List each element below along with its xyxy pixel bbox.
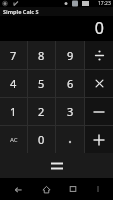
staticText: 2 bbox=[38, 104, 45, 119]
button[interactable]: Back bbox=[8, 179, 28, 199]
button[interactable] bbox=[56, 126, 84, 153]
button[interactable]: 3 bbox=[56, 98, 84, 125]
button[interactable]: 8 bbox=[28, 41, 55, 69]
staticText: 4 bbox=[10, 76, 17, 91]
staticText: 5 bbox=[38, 76, 45, 91]
button[interactable]: Recent apps bbox=[63, 179, 83, 199]
button[interactable]: Home bbox=[36, 179, 56, 199]
staticText: 8 bbox=[38, 48, 45, 63]
staticText: 0 bbox=[94, 17, 104, 39]
button[interactable]: 5 bbox=[28, 70, 55, 97]
staticText: 3 bbox=[67, 104, 74, 119]
staticText: AC bbox=[10, 136, 18, 144]
button[interactable] bbox=[85, 126, 113, 153]
staticText: 1 bbox=[10, 104, 17, 119]
staticText: 9 bbox=[67, 48, 74, 63]
button[interactable]: Equals bbox=[0, 153, 113, 178]
button[interactable]: 2 bbox=[28, 98, 55, 125]
button[interactable] bbox=[85, 41, 113, 69]
button[interactable]: More options bbox=[91, 182, 105, 196]
button[interactable]: 9 bbox=[56, 41, 84, 69]
button[interactable]: 4 bbox=[0, 70, 27, 97]
button[interactable]: 7 bbox=[0, 41, 27, 69]
staticText: 7 bbox=[10, 48, 17, 63]
button[interactable]: 1 bbox=[0, 98, 27, 125]
staticText: Simple Calc S bbox=[3, 8, 39, 15]
button[interactable]: 6 bbox=[56, 70, 84, 97]
button[interactable] bbox=[85, 98, 113, 125]
button[interactable]: 0 bbox=[28, 126, 55, 153]
button[interactable] bbox=[85, 70, 113, 97]
staticText: 17:23 bbox=[98, 0, 111, 7]
staticText: 0 bbox=[38, 132, 45, 147]
button[interactable]: AC bbox=[0, 126, 27, 153]
staticText: 6 bbox=[67, 76, 74, 91]
